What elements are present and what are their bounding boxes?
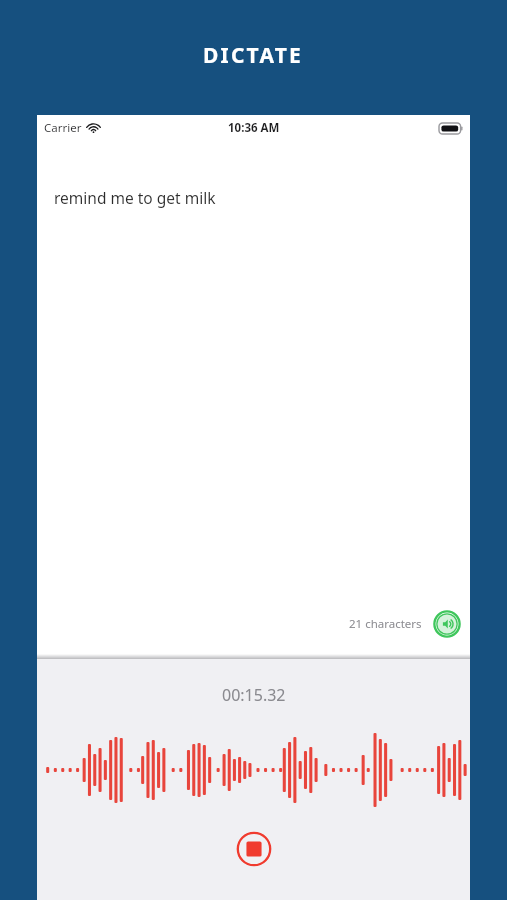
staticText: 10:36 AM	[228, 120, 280, 136]
staticText: remind me to get milk	[54, 187, 216, 208]
button[interactable]: Stop recording	[236, 831, 272, 867]
staticText: Carrier	[44, 120, 82, 136]
button[interactable]: remind me to get milk	[37, 141, 470, 654]
staticText: DICTATE	[203, 41, 304, 70]
button[interactable]: Play audio	[434, 611, 460, 637]
staticText: 21 characters	[349, 616, 422, 632]
staticText: 00:15.32	[222, 684, 286, 706]
